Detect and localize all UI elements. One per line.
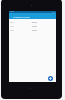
button[interactable] (9, 24, 56, 28)
button[interactable]: Material Demo (9, 13, 56, 19)
button[interactable]: Add (48, 76, 53, 81)
button[interactable] (9, 20, 56, 24)
button[interactable] (9, 28, 56, 32)
staticText: Material Demo (13, 15, 30, 18)
